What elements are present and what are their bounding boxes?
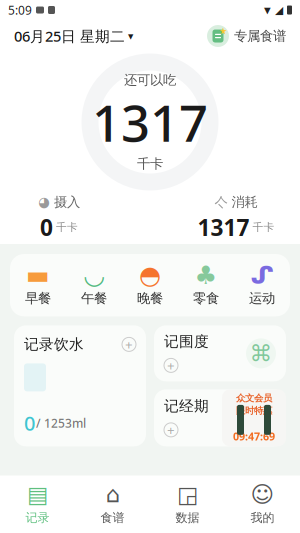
staticText: + [167, 356, 175, 374]
staticText: ⌘ [249, 340, 272, 366]
staticText: 运动 [249, 290, 275, 306]
staticText: 千卡 [137, 156, 163, 172]
staticText: 记录饮水 [24, 335, 84, 353]
staticText: ᔑ [250, 261, 273, 289]
staticText: 我的 [250, 510, 274, 525]
staticText: ♣ [194, 261, 217, 289]
staticText: 5:09 [8, 2, 32, 18]
staticText: 09:47:69 [233, 429, 275, 443]
staticText: 摄入 [54, 194, 80, 210]
staticText: ◓ [139, 261, 161, 289]
button[interactable]: ★ [207, 25, 286, 47]
staticText: 还可以吃 [124, 72, 176, 88]
staticText: ◢ [275, 4, 283, 16]
staticText: 记围度 [164, 332, 209, 350]
button[interactable]: 06月25日 星期二 [14, 26, 133, 46]
staticText: ◲ [177, 481, 198, 507]
staticText: / 1253ml [36, 415, 86, 431]
staticText: 0 [24, 410, 35, 436]
staticText: 千卡 [56, 221, 78, 234]
staticText: 限时特惠 [236, 405, 272, 416]
staticText: 1317 [92, 88, 208, 156]
button[interactable]: ▬ [10, 264, 66, 306]
staticText: 早餐 [25, 290, 51, 306]
staticText: 1317 [197, 212, 249, 242]
button[interactable]: ☺ [225, 481, 300, 525]
staticText: ◕ [38, 194, 50, 209]
staticText: 06月25日 星期二 [14, 26, 125, 46]
staticText: 午餐 [81, 290, 107, 306]
button[interactable]: 记经期 [154, 389, 286, 446]
button[interactable]: 记围度 [154, 325, 286, 381]
button[interactable]: ◓ [122, 264, 178, 306]
staticText: ★ [219, 26, 227, 36]
button[interactable]: ▤ [0, 481, 75, 525]
button[interactable]: ᔑ [234, 264, 290, 306]
staticText: 千卡 [252, 221, 274, 234]
staticText: ☺ [250, 481, 274, 507]
staticText: ▬ [26, 261, 50, 289]
staticText: 食谱 [100, 510, 124, 525]
staticText: 记录 [25, 510, 49, 525]
button[interactable]: 记录饮水 [14, 325, 146, 446]
staticText: 0 [40, 212, 53, 242]
staticText: 晚餐 [137, 290, 163, 306]
staticText: + [125, 335, 133, 353]
staticText: ◡ [84, 261, 103, 289]
button[interactable]: ◡ [66, 264, 122, 306]
staticText: 数据 [175, 510, 199, 525]
staticText: ▤ [27, 481, 48, 507]
staticText: 专属食谱 [234, 28, 286, 44]
button[interactable]: ⌂ [75, 481, 150, 525]
staticText: + [167, 421, 175, 439]
staticText: ▾ [128, 30, 133, 42]
staticText: ⌂ [105, 481, 119, 507]
staticText: 零食 [193, 290, 219, 306]
button[interactable]: ♣ [178, 264, 234, 306]
button[interactable]: ◲ [150, 481, 225, 525]
staticText: 众文会员 [236, 392, 272, 404]
staticText: 消耗 [231, 194, 257, 210]
staticText: 记经期 [164, 397, 209, 415]
staticText: ▾ [264, 2, 271, 17]
staticText: 亽 [214, 194, 227, 210]
